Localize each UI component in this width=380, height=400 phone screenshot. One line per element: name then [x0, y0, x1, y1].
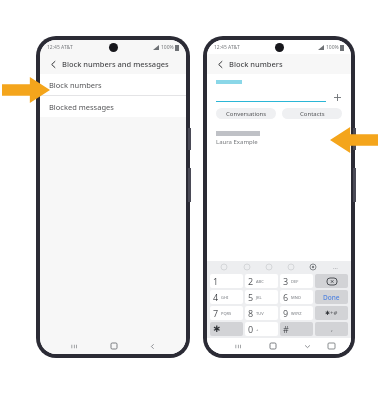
- staticText: 4: [213, 291, 219, 303]
- button[interactable]: Back: [47, 58, 59, 70]
- button[interactable]: Contacts: [282, 108, 342, 119]
- button[interactable]: 6: [280, 290, 313, 304]
- staticText: Block numbers: [229, 59, 283, 69]
- button[interactable]: ✱+#: [315, 306, 348, 320]
- button[interactable]: Remove: [332, 133, 342, 143]
- staticText: 12:45 AT&T: [47, 44, 73, 51]
- staticText: #: [283, 323, 289, 335]
- staticText: 1: [213, 275, 219, 287]
- staticText: JKL: [256, 295, 262, 300]
- staticText: TUV: [256, 311, 264, 316]
- button[interactable]: #: [280, 322, 313, 336]
- staticText: ABC: [256, 279, 264, 284]
- button[interactable]: Block numbers: [40, 74, 186, 95]
- staticText: PQRS: [221, 311, 232, 316]
- staticText: 100%: [326, 44, 339, 51]
- staticText: 6: [283, 291, 289, 303]
- staticText: DEF: [291, 279, 299, 284]
- staticText: Done: [323, 293, 340, 302]
- staticText: 0: [248, 323, 254, 335]
- staticText: 100%: [161, 44, 174, 51]
- staticText: Conversations: [226, 110, 267, 118]
- button[interactable]: 3: [280, 274, 313, 288]
- button[interactable]: 5: [245, 290, 278, 304]
- button[interactable]: 4: [210, 290, 243, 304]
- button[interactable]: Done: [315, 290, 348, 304]
- button[interactable]: 7: [210, 306, 243, 320]
- staticText: MNO: [291, 295, 301, 300]
- button[interactable]: Laura Example: [207, 127, 351, 149]
- staticText: GHI: [221, 295, 229, 300]
- staticText: 3: [283, 275, 289, 287]
- staticText: ✱+#: [325, 309, 338, 317]
- staticText: 9: [283, 307, 289, 319]
- staticText: 5: [248, 291, 254, 303]
- button[interactable]: Conversations: [216, 108, 276, 119]
- staticText: 12:45 AT&T: [214, 44, 240, 51]
- staticText: Blocked messages: [49, 102, 114, 112]
- button[interactable]: 1: [210, 274, 243, 288]
- staticText: +: [256, 327, 259, 332]
- staticText: Contacts: [300, 110, 325, 118]
- staticText: WXYZ: [291, 311, 302, 316]
- button[interactable]: ,: [315, 322, 348, 336]
- button[interactable]: 0: [245, 322, 278, 336]
- staticText: ...: [333, 263, 338, 271]
- staticText: Block numbers and messages: [62, 59, 169, 69]
- button[interactable]: Add number: [332, 92, 342, 102]
- staticText: ✱: [213, 324, 221, 334]
- staticText: ,: [331, 324, 333, 334]
- button[interactable]: Blocked messages: [40, 96, 186, 117]
- button[interactable]: 8: [245, 306, 278, 320]
- button[interactable]: 9: [280, 306, 313, 320]
- button[interactable]: [315, 274, 348, 288]
- button[interactable]: 2: [245, 274, 278, 288]
- staticText: 8: [248, 307, 254, 319]
- staticText: 2: [248, 275, 254, 287]
- staticText: 7: [213, 307, 219, 319]
- button[interactable]: Back: [214, 58, 226, 70]
- staticText: Laura Example: [216, 138, 258, 146]
- staticText: Block numbers: [49, 80, 102, 90]
- button[interactable]: ✱: [210, 322, 243, 336]
